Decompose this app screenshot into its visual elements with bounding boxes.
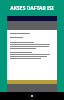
button[interactable]: AKSES DAFTAR ISI [0, 0, 64, 16]
staticText: AKSES DAFTAR ISI [10, 5, 54, 12]
